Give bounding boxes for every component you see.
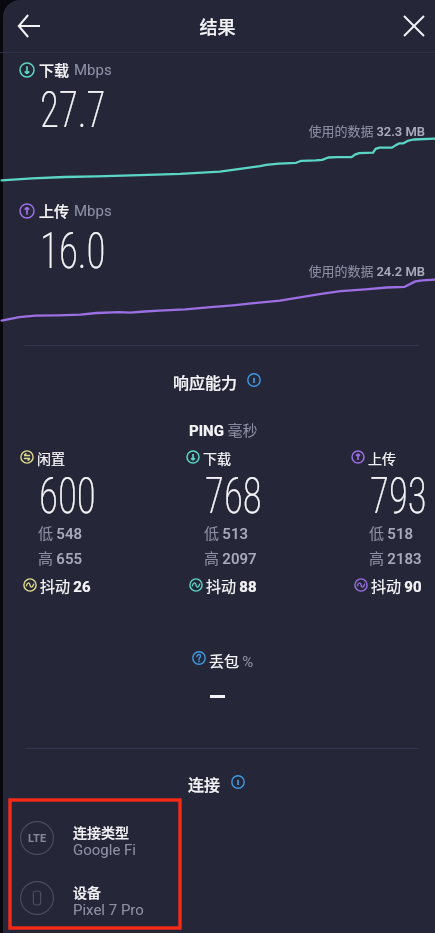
button[interactable]: 设备 <box>14 877 180 933</box>
staticText: 下载 <box>203 448 231 468</box>
staticText: 连接 <box>188 772 221 795</box>
staticText: 高 2097 <box>204 547 257 569</box>
staticText: 设备 <box>73 882 101 902</box>
staticText: 低 518 <box>369 522 413 544</box>
staticText: Google Fi <box>73 841 137 859</box>
button[interactable]: Responsiveness info <box>247 373 261 387</box>
staticText: 结果 <box>0 13 435 39</box>
button[interactable]: Close <box>392 4 435 48</box>
staticText: 闲置 <box>37 448 65 468</box>
staticText: 响应能力 <box>173 370 238 393</box>
staticText: 抖动 26 <box>40 575 91 597</box>
staticText: Mbps <box>74 202 112 220</box>
staticText: 下载 <box>39 59 70 81</box>
staticText: 使用的数据 32.3 MB <box>0 121 425 140</box>
staticText: 连接类型 <box>73 822 129 842</box>
staticText: 上传 <box>368 448 396 468</box>
staticText: 600 <box>39 467 96 526</box>
button[interactable]: Back <box>7 4 51 48</box>
staticText: 27.7 <box>40 81 105 140</box>
staticText: 高 655 <box>38 547 82 569</box>
button[interactable]: Connection info <box>231 775 245 789</box>
staticText: 低 513 <box>204 522 248 544</box>
staticText: 768 <box>205 467 262 526</box>
staticText: 793 <box>370 467 427 526</box>
staticText: 丢包 % <box>209 650 254 672</box>
staticText: LTE <box>28 832 47 845</box>
staticText: 高 2183 <box>369 547 422 569</box>
staticText: 抖动 90 <box>371 575 422 597</box>
button[interactable]: LTE <box>14 817 180 875</box>
staticText: 抖动 88 <box>206 575 257 597</box>
staticText: Mbps <box>74 61 112 79</box>
staticText: 上传 <box>39 200 70 222</box>
staticText: 低 548 <box>38 522 82 544</box>
staticText: Pixel 7 Pro <box>73 901 144 919</box>
staticText: PING 毫秒 <box>189 419 258 441</box>
staticText: 16.0 <box>40 222 105 281</box>
button[interactable]: Packet loss info <box>192 651 206 665</box>
staticText: 使用的数据 24.2 MB <box>0 261 425 280</box>
